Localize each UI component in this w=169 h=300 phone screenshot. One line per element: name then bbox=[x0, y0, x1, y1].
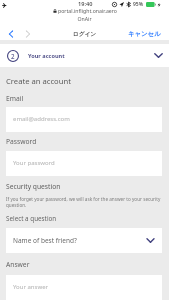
button[interactable]: Back bbox=[4, 27, 18, 41]
button[interactable]: Name of best friend? bbox=[6, 228, 162, 253]
button[interactable]: Your password bbox=[6, 151, 162, 176]
staticText: Security question bbox=[6, 182, 61, 191]
button[interactable]: Your answer bbox=[6, 275, 162, 300]
staticText: Your answer bbox=[13, 283, 48, 291]
staticText: portal.inflight.onair.aero bbox=[58, 7, 117, 14]
staticText: Your account bbox=[28, 52, 65, 60]
staticText: 19:40 bbox=[78, 0, 93, 8]
button[interactable]: キャンセル bbox=[126, 27, 163, 41]
button[interactable]: email@address.com bbox=[6, 107, 162, 132]
staticText: Answer bbox=[6, 260, 30, 269]
staticText: キャンセル bbox=[128, 30, 161, 38]
button[interactable]: 2 bbox=[0, 44, 169, 67]
staticText: email@address.com bbox=[13, 115, 70, 123]
staticText: 95% bbox=[133, 1, 144, 8]
button[interactable]: Forward bbox=[21, 27, 35, 41]
staticText: 2 bbox=[11, 52, 15, 60]
staticText: Password bbox=[6, 137, 37, 146]
staticText: If you forget your password, we will ask… bbox=[6, 196, 164, 209]
staticText: OnAir bbox=[0, 15, 169, 22]
staticText: Your password bbox=[13, 159, 55, 167]
staticText: Select a question bbox=[6, 214, 57, 223]
staticText: Name of best friend? bbox=[13, 236, 77, 245]
staticText: ログイン bbox=[0, 31, 169, 38]
staticText: Email bbox=[6, 94, 24, 103]
staticText: Create an account bbox=[6, 76, 71, 86]
